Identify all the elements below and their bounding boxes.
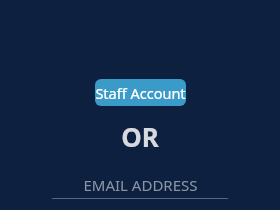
button[interactable]: Staff Account bbox=[95, 79, 186, 106]
staticText: EMAIL ADDRESS bbox=[83, 175, 198, 195]
button[interactable]: EMAIL ADDRESS bbox=[52, 175, 228, 199]
staticText: Staff Account bbox=[95, 83, 186, 103]
staticText: OR bbox=[121, 119, 159, 154]
